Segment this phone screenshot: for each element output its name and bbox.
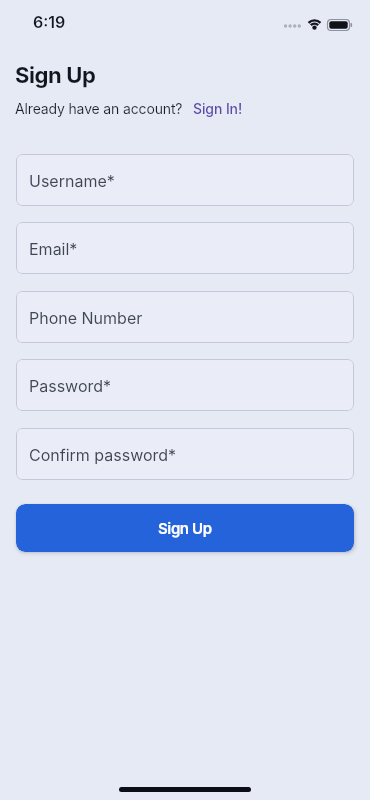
button[interactable]: Username* [16,154,354,206]
staticText: Username* [29,171,115,190]
staticText: Confirm password* [29,445,177,464]
button[interactable]: Password* [16,359,354,411]
staticText: 6:19 [33,12,66,31]
staticText: Sign Up [158,519,212,537]
button[interactable]: Sign Up [16,504,354,552]
staticText: Sign Up [15,62,96,89]
button[interactable]: Sign In! [193,100,243,117]
staticText: Phone Number [29,308,143,327]
staticText: Password* [29,376,112,395]
staticText: Already have an account? [15,100,183,117]
staticText: Email* [29,239,78,258]
button[interactable]: Email* [16,222,354,274]
button[interactable]: Confirm password* [16,428,354,480]
button[interactable]: Phone Number [16,291,354,343]
